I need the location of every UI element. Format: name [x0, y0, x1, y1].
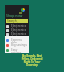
- button[interactable]: Easy returns: [6, 48, 28, 53]
- staticText: Electronics deal: [11, 24, 28, 28]
- button[interactable]: Electronics deal: [6, 28, 28, 32]
- staticText: Big savings: [11, 43, 27, 47]
- button[interactable]: Big savings: [6, 43, 28, 48]
- staticText: Doorstep: [0, 63, 64, 67]
- button[interactable]: Account: [21, 8, 25, 12]
- staticText: Easy returns: [11, 48, 28, 53]
- button[interactable]: Express ship: [6, 38, 28, 43]
- button[interactable]: Search products: [6, 19, 28, 23]
- staticText: Search products: [7, 19, 28, 23]
- staticText: Electronics deal: [11, 28, 28, 32]
- button[interactable]: Electronics deal: [6, 32, 28, 36]
- staticText: Big Brands. Best: [0, 54, 64, 58]
- staticText: Shop now: [6, 13, 23, 18]
- staticText: Prices. Delivered: [0, 57, 64, 61]
- staticText: Right To Your: [0, 60, 64, 64]
- button[interactable]: Electronics deal: [6, 24, 28, 28]
- staticText: Express ship: [11, 38, 28, 43]
- staticText: Electronics deal: [11, 32, 28, 36]
